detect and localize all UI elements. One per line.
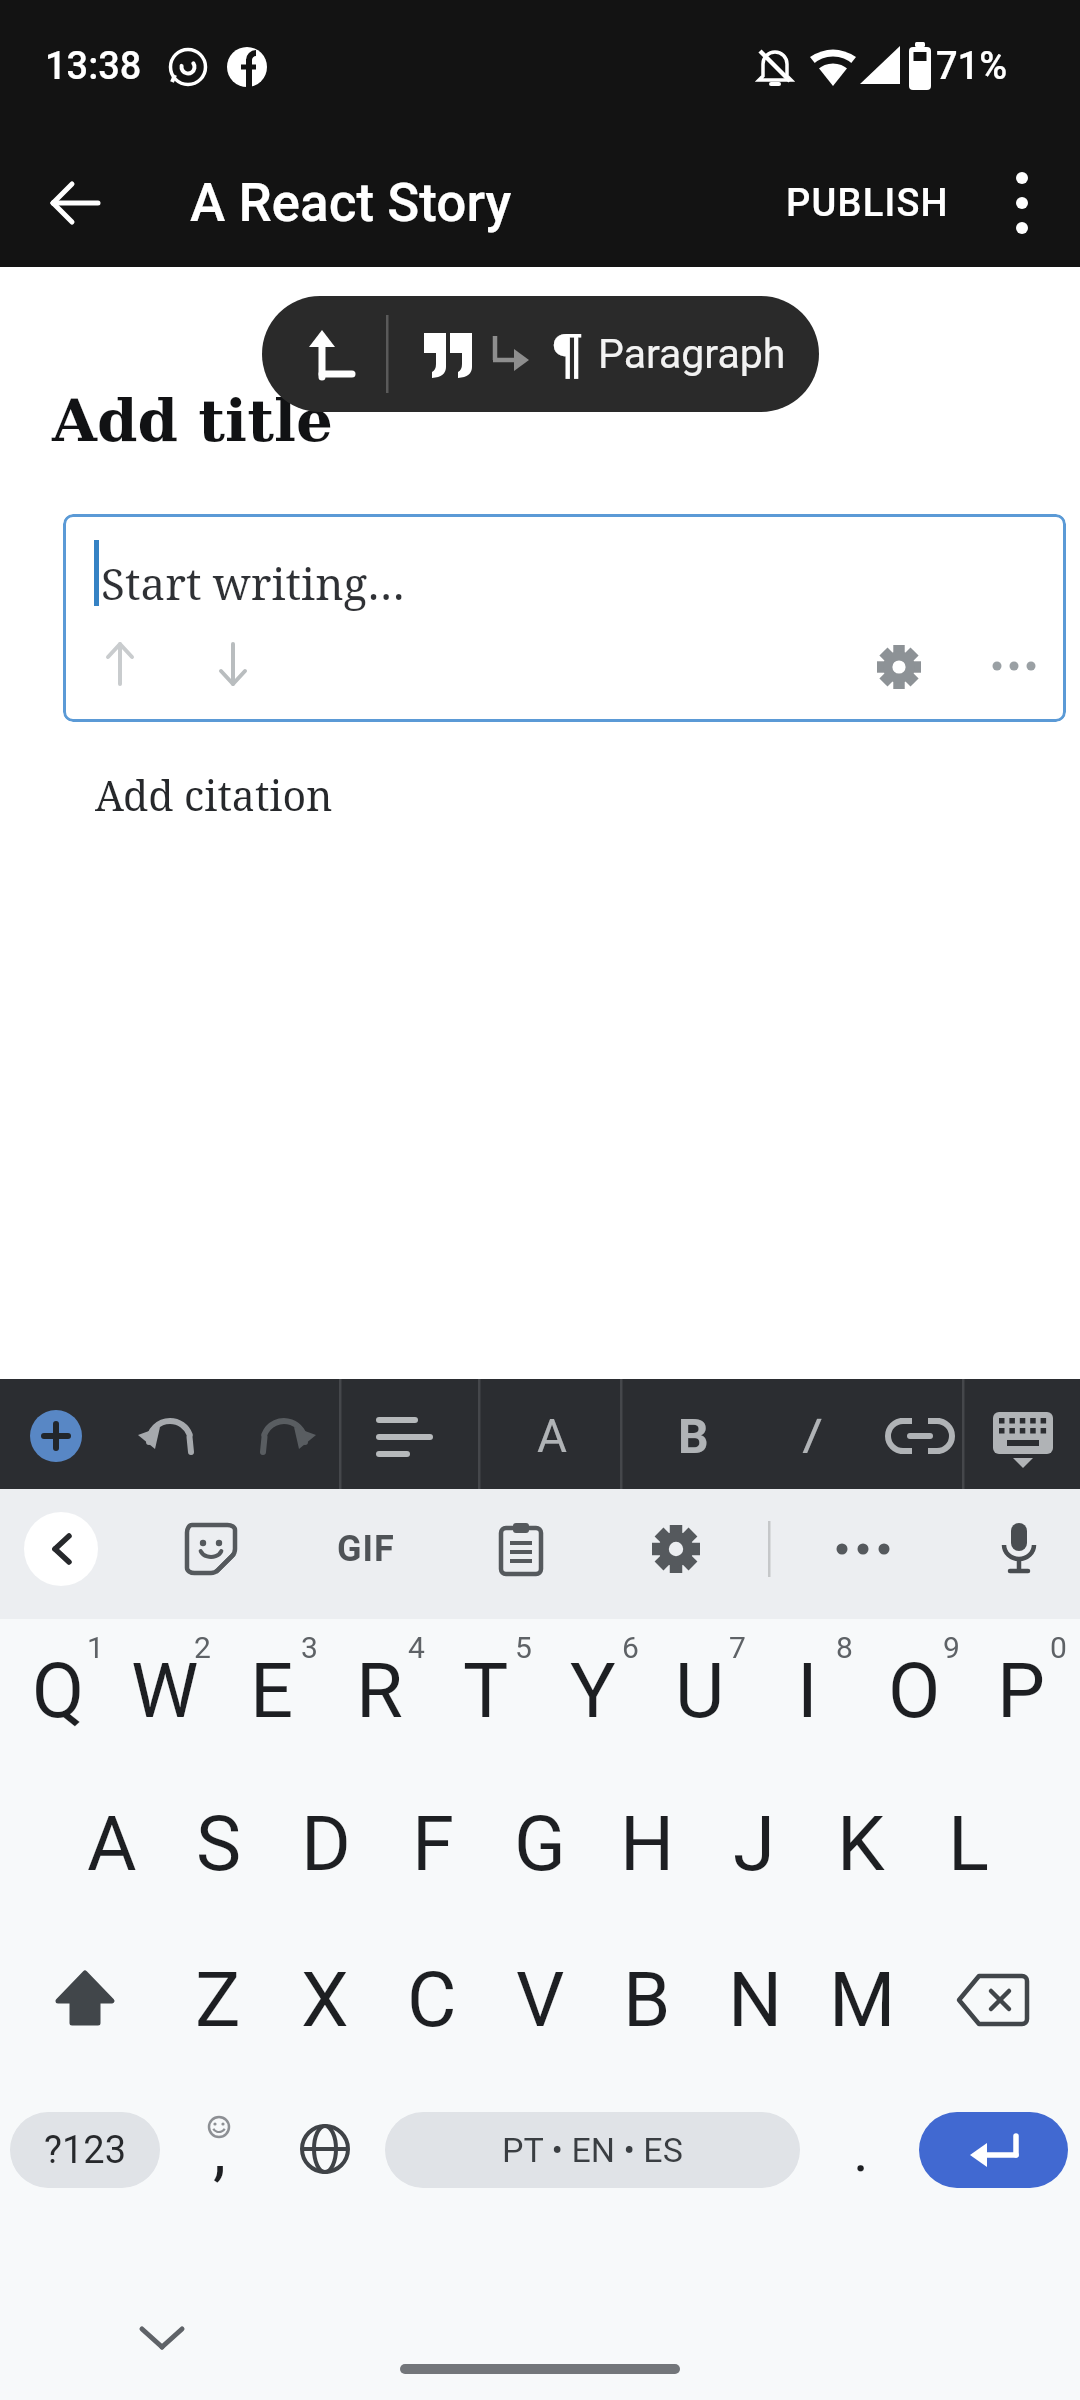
button[interactable]: Z <box>166 1929 270 2069</box>
button[interactable]: ?123 <box>10 2112 160 2188</box>
button[interactable]: C <box>380 1929 484 2069</box>
button[interactable] <box>994 163 1050 243</box>
button[interactable]: A <box>60 1773 164 1913</box>
staticText: H <box>620 1799 675 1888</box>
button[interactable] <box>872 640 926 694</box>
staticText: 9 <box>943 1630 960 1665</box>
button[interactable] <box>24 1512 98 1586</box>
button[interactable]: M <box>810 1929 914 2069</box>
staticText: 4 <box>408 1630 425 1665</box>
staticText: 3 <box>301 1630 318 1665</box>
staticText: Start writing… <box>101 553 405 613</box>
button[interactable] <box>248 1407 320 1467</box>
button[interactable]: B <box>638 1381 748 1491</box>
button[interactable]: PT • EN • ES <box>385 2112 800 2188</box>
staticText: Z <box>195 1955 241 2044</box>
button[interactable]: L <box>916 1773 1020 1913</box>
button[interactable]: U <box>648 1620 752 1760</box>
button[interactable]: I <box>752 1381 862 1491</box>
staticText: , <box>213 2112 226 2189</box>
button[interactable]: I <box>755 1620 859 1760</box>
button[interactable]: D <box>274 1773 378 1913</box>
button[interactable]: E <box>220 1620 324 1760</box>
button[interactable] <box>63 514 1066 722</box>
staticText: 71% <box>936 44 1008 89</box>
button[interactable]: S <box>167 1773 271 1913</box>
staticText: Y <box>570 1646 616 1735</box>
button[interactable]: P <box>969 1620 1073 1760</box>
staticText: 2 <box>194 1630 211 1665</box>
staticText: PT • EN • ES <box>502 2130 683 2170</box>
button[interactable]: , <box>189 2110 249 2190</box>
staticText: S <box>196 1799 242 1888</box>
button[interactable] <box>295 319 365 389</box>
button[interactable]: . <box>831 2105 891 2195</box>
staticText: GIF <box>337 1528 395 1570</box>
button[interactable]: PUBLISH <box>757 163 977 243</box>
button[interactable] <box>828 1529 898 1569</box>
staticText: ?123 <box>44 2128 127 2173</box>
button[interactable]: R <box>327 1620 431 1760</box>
button[interactable] <box>297 2121 353 2177</box>
staticText: I <box>797 1646 818 1735</box>
button[interactable] <box>210 641 256 687</box>
button[interactable] <box>493 1521 549 1577</box>
button[interactable] <box>20 1400 92 1472</box>
button[interactable] <box>97 641 143 687</box>
staticText: A <box>537 1409 568 1463</box>
button[interactable]: W <box>113 1620 217 1760</box>
button[interactable] <box>886 1416 954 1456</box>
button[interactable]: N <box>703 1929 807 2069</box>
button[interactable]: O <box>862 1620 966 1760</box>
staticText: G <box>514 1799 566 1888</box>
staticText: B <box>678 1408 709 1464</box>
staticText: B <box>623 1955 671 2044</box>
button[interactable]: J <box>702 1773 806 1913</box>
button[interactable]: B <box>595 1929 699 2069</box>
button[interactable] <box>990 1404 1056 1470</box>
staticText: Add citation <box>95 767 333 823</box>
staticText: ¶ <box>550 323 585 386</box>
staticText: PUBLISH <box>786 181 949 226</box>
button[interactable]: F <box>381 1773 485 1913</box>
button[interactable]: K <box>809 1773 913 1913</box>
staticText: 5 <box>515 1630 532 1665</box>
staticText: P <box>997 1646 1045 1735</box>
button[interactable] <box>417 331 479 381</box>
button[interactable] <box>919 2112 1068 2188</box>
button[interactable] <box>955 1972 1031 2028</box>
button[interactable] <box>484 328 536 380</box>
button[interactable]: A <box>497 1381 607 1491</box>
button[interactable]: T <box>434 1620 538 1760</box>
button[interactable] <box>183 1521 239 1577</box>
staticText: Add title <box>52 387 333 455</box>
button[interactable] <box>991 1519 1047 1579</box>
button[interactable] <box>49 1963 121 2035</box>
button[interactable] <box>984 646 1044 686</box>
button[interactable]: Q <box>6 1620 110 1760</box>
staticText: E <box>250 1646 294 1735</box>
staticText: Paragraph <box>598 330 786 378</box>
staticText: M <box>829 1955 896 2044</box>
button[interactable]: G <box>488 1773 592 1913</box>
staticText: 13:38 <box>45 44 142 89</box>
staticText: J <box>733 1799 775 1888</box>
staticText: K <box>837 1799 885 1888</box>
button[interactable]: GIF <box>296 1499 436 1599</box>
button[interactable]: H <box>595 1773 699 1913</box>
button[interactable] <box>48 175 104 231</box>
button[interactable]: ¶ <box>527 309 607 399</box>
staticText: X <box>301 1955 349 2044</box>
button[interactable]: V <box>488 1929 592 2069</box>
staticText: Q <box>32 1646 85 1735</box>
button[interactable] <box>132 2317 192 2357</box>
staticText: 8 <box>836 1630 853 1665</box>
staticText: C <box>407 1955 457 2044</box>
staticText: N <box>728 1955 783 2044</box>
button[interactable]: X <box>273 1929 377 2069</box>
button[interactable] <box>134 1407 206 1467</box>
button[interactable] <box>647 1520 705 1578</box>
staticText: 6 <box>622 1630 639 1665</box>
button[interactable]: Y <box>541 1620 645 1760</box>
button[interactable] <box>375 1409 439 1465</box>
